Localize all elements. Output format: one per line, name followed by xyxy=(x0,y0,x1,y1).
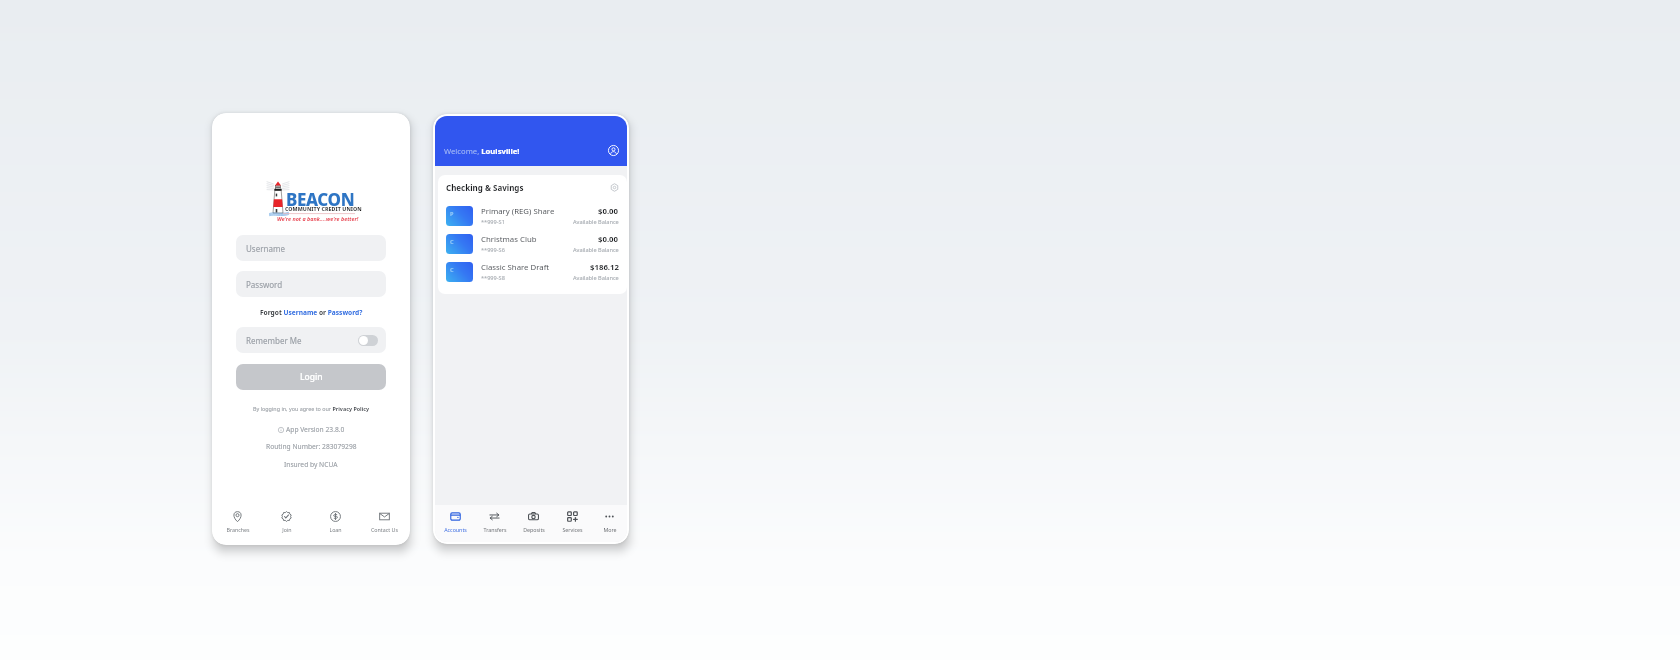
button[interactable]: P xyxy=(446,206,619,226)
button[interactable]: C xyxy=(446,262,619,282)
staticText: By logging in, you agree to our Privacy … xyxy=(253,405,370,412)
button[interactable]: Services xyxy=(553,511,592,537)
button[interactable]: Join xyxy=(262,511,311,537)
staticText: More xyxy=(603,526,617,533)
staticText: Classic Share Draft xyxy=(481,262,550,273)
button[interactable]: Remember Me xyxy=(236,327,386,353)
button[interactable]: Username xyxy=(236,235,386,261)
staticText: App Version 23.8.0 xyxy=(286,425,345,434)
staticText: Christmas Club xyxy=(481,234,537,245)
staticText: **999-S8 xyxy=(481,274,505,282)
staticText: Welcome, Louisville! xyxy=(444,146,520,156)
staticText: $186.12 xyxy=(590,262,619,273)
staticText: Loan xyxy=(329,526,342,533)
button[interactable]: Settings xyxy=(610,183,619,192)
button[interactable]: Forgot Username or Password? xyxy=(260,308,363,317)
staticText: Insured by NCUA xyxy=(284,460,338,469)
staticText: Login xyxy=(300,371,323,383)
staticText: COMMUNITY CREDIT UNION xyxy=(285,205,362,212)
staticText: We're not a bank....we're better! xyxy=(277,215,359,222)
staticText: Available Balance xyxy=(573,274,619,282)
staticText: Join xyxy=(282,526,292,533)
staticText: Primary (REG) Share xyxy=(481,206,555,217)
staticText: BEACON xyxy=(286,188,355,211)
staticText: Accounts xyxy=(444,526,467,533)
staticText: Deposits xyxy=(523,526,545,533)
staticText: **999-S1 xyxy=(481,218,505,226)
staticText: **999-S6 xyxy=(481,246,505,254)
button[interactable]: C xyxy=(446,234,619,254)
button[interactable]: Loan xyxy=(311,511,360,537)
staticText: Forgot Username or Password? xyxy=(260,308,363,317)
staticText: C xyxy=(450,238,454,245)
staticText: Available Balance xyxy=(573,218,619,226)
button[interactable]: Profile xyxy=(608,145,619,156)
staticText: Remember Me xyxy=(246,335,302,346)
staticText: Contact Us xyxy=(371,526,398,533)
staticText: P xyxy=(450,210,454,217)
staticText: Username xyxy=(246,243,285,254)
staticText: Password xyxy=(246,279,283,290)
button[interactable]: By logging in, you agree to our Privacy … xyxy=(253,405,370,412)
staticText: C xyxy=(450,266,454,273)
staticText: Transfers xyxy=(483,526,507,533)
button[interactable]: Contact Us xyxy=(360,511,409,537)
staticText: Available Balance xyxy=(573,246,619,254)
staticText: $0.00 xyxy=(598,206,619,217)
staticText: Checking & Savings xyxy=(446,182,524,193)
button[interactable]: Branches xyxy=(213,511,262,537)
staticText: $0.00 xyxy=(598,234,619,245)
button[interactable]: Deposits xyxy=(514,511,553,537)
button[interactable]: Transfers xyxy=(475,511,514,537)
button[interactable]: More xyxy=(592,511,627,537)
staticText: Branches xyxy=(226,526,250,533)
button[interactable]: Login xyxy=(236,364,386,390)
staticText: Services xyxy=(562,526,583,533)
button[interactable]: Password xyxy=(236,271,386,297)
button[interactable]: Accounts xyxy=(436,511,475,537)
staticText: Routing Number: 283079298 xyxy=(266,442,357,451)
